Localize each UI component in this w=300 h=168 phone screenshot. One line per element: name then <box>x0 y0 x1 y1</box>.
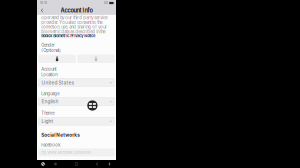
staticText: biometric data as described in the <box>41 29 105 34</box>
button[interactable]: Do not disturb <box>39 160 47 168</box>
button[interactable]: United States <box>38 79 115 87</box>
staticText: collection, use, and sharing of your <box>41 24 107 30</box>
staticText: Language <box>41 91 59 96</box>
staticText: 10:14 <box>40 1 47 5</box>
staticText: English <box>41 99 58 104</box>
button[interactable]: Back <box>39 7 46 14</box>
button[interactable]: Female <box>77 55 115 63</box>
button[interactable]: Apps <box>51 160 59 168</box>
button[interactable]: English <box>38 98 115 105</box>
button[interactable]: Voice search <box>105 160 113 168</box>
button[interactable]: Roblox Biometric Privacy Notice <box>41 34 95 38</box>
staticText: 4G <box>104 1 108 5</box>
button[interactable]: Male <box>38 55 76 63</box>
staticText: Location <box>41 72 57 77</box>
staticText: Roblox Biometric Privacy Notice <box>41 34 95 38</box>
button[interactable]: Light <box>38 117 115 125</box>
button[interactable]: Home <box>72 160 80 168</box>
staticText: Account <box>41 67 56 72</box>
staticText: operated by our third party service <box>41 15 107 20</box>
staticText: Networks <box>56 132 80 138</box>
staticText: United States <box>41 80 74 85</box>
button[interactable]: Back <box>93 160 101 168</box>
staticText: (Optional) <box>41 48 61 53</box>
staticText: Gender <box>41 43 55 48</box>
staticText: Account Info <box>60 7 92 14</box>
staticText: Theme <box>41 111 54 116</box>
staticText: Social <box>41 132 55 138</box>
staticText: eg. www.facebook.com/xxxxx <box>41 150 91 155</box>
staticText: Light <box>41 118 53 124</box>
staticText: provider. You also consent to the <box>41 20 102 25</box>
button[interactable]: eg. www.facebook.com/xxxxx <box>38 148 115 156</box>
staticText: Facebook <box>41 142 60 148</box>
